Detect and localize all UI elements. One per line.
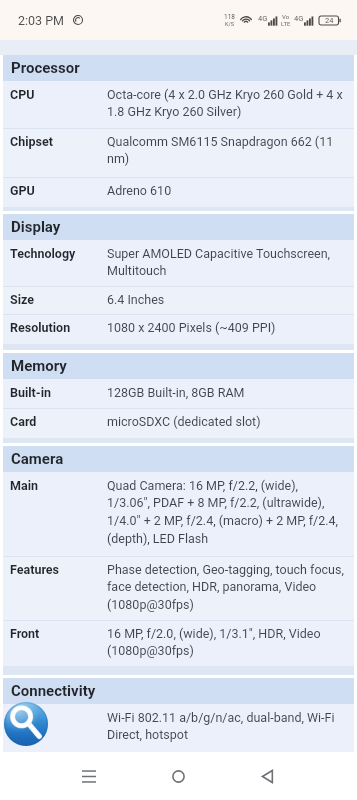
staticText: 128GB Built-in, 8GB RAM	[107, 385, 245, 400]
button[interactable]: Card	[3, 408, 354, 438]
staticText: Chipset	[10, 134, 53, 149]
button[interactable]: Search	[4, 702, 48, 746]
staticText: Size	[10, 292, 35, 307]
staticText: Octa-core (4 x 2.0 GHz Kryo 260 Gold + 4…	[107, 87, 344, 119]
staticText: 4G	[258, 14, 268, 23]
staticText: Adreno 610	[107, 183, 172, 198]
staticText: Connectivity	[11, 682, 96, 700]
staticText: Processor	[11, 59, 80, 77]
staticText: Features	[10, 562, 60, 577]
staticText: Vo	[282, 13, 290, 20]
staticText: 1080 x 2400 Pixels (~409 PPI)	[107, 320, 276, 335]
staticText: Main	[10, 478, 38, 493]
button[interactable]: Resolution	[3, 314, 354, 344]
staticText: Camera	[11, 450, 64, 468]
staticText: 24	[325, 16, 334, 25]
staticText: K/S	[225, 21, 234, 27]
staticText: Card	[10, 414, 37, 429]
staticText: Quad Camera: 16 MP, f/2.2, (wide), 1/3.0…	[107, 478, 344, 546]
staticText: Super AMOLED Capacitive Touchscreen, Mul…	[107, 246, 344, 278]
button[interactable]: Technology	[3, 240, 354, 286]
staticText: Memory	[11, 357, 67, 375]
staticText: 6.4 Inches	[107, 292, 165, 307]
staticText: Built-in	[10, 385, 51, 400]
staticText: CPU	[10, 87, 35, 102]
staticText: Wi-Fi 802.11 a/b/g/n/ac, dual-band, Wi-F…	[107, 710, 344, 742]
staticText: 2:03 PM	[18, 13, 65, 28]
staticText: 4G	[294, 14, 304, 23]
button[interactable]: GPU	[3, 177, 354, 207]
staticText: 16 MP, f/2.0, (wide), 1/3.1", HDR, Video…	[107, 626, 344, 658]
staticText: Display	[11, 218, 61, 236]
staticText: LTE	[281, 20, 291, 27]
button[interactable]: Size	[3, 286, 354, 314]
button[interactable]: Front	[3, 620, 354, 666]
button[interactable]: Home	[154, 752, 202, 800]
button[interactable]: Main	[3, 472, 354, 556]
button[interactable]: Back	[243, 752, 291, 800]
staticText: 118	[224, 13, 235, 21]
staticText: Technology	[10, 246, 76, 261]
button[interactable]: Wi-Fi 802.11 a/b/g/n/ac, dual-band, Wi-F…	[3, 704, 354, 752]
staticText: GPU	[10, 183, 35, 198]
button[interactable]: Built-in	[3, 379, 354, 408]
button[interactable]: Features	[3, 556, 354, 620]
staticText: Resolution	[10, 320, 71, 335]
staticText: Phase detection, Geo-tagging, touch focu…	[107, 562, 344, 612]
staticText: Front	[10, 626, 40, 641]
button[interactable]: CPU	[3, 81, 354, 128]
button[interactable]: Chipset	[3, 128, 354, 177]
staticText: microSDXC (dedicated slot)	[107, 414, 261, 429]
staticText: Qualcomm SM6115 Snapdragon 662 (11 nm)	[107, 134, 344, 166]
button[interactable]: Recents	[65, 752, 113, 800]
